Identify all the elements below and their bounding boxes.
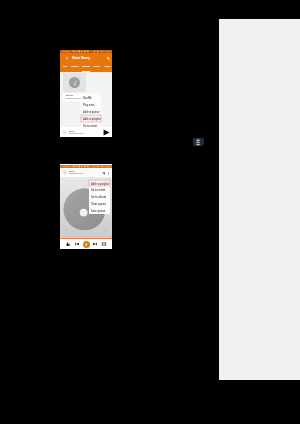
- button[interactable]: Go to album: [89, 193, 110, 200]
- staticText: SONGS: [93, 65, 100, 68]
- button[interactable]: ALBUMS: [80, 62, 91, 72]
- staticText: Go to artist: [83, 124, 98, 127]
- button[interactable]: Go to artist: [81, 122, 101, 129]
- button[interactable]: Play: [83, 241, 90, 248]
- staticText: unknown artist: [69, 172, 84, 175]
- staticText: unknown artist: [69, 132, 84, 135]
- staticText: Add to queue: [83, 110, 100, 113]
- button[interactable]: Add to playlist: [89, 180, 110, 186]
- staticText: ISTS: [63, 65, 67, 68]
- button[interactable]: Previous: [74, 241, 80, 247]
- button[interactable]: Add to playlist: [81, 115, 101, 122]
- staticText: GENRE: [104, 65, 111, 68]
- button[interactable]: ARTISTS: [69, 62, 80, 72]
- staticText: Add to playlist: [91, 182, 109, 185]
- button[interactable]: More options: [106, 171, 110, 175]
- button[interactable]: Go to artist: [89, 186, 110, 193]
- button[interactable]: ISTS: [60, 62, 69, 72]
- button[interactable]: Thumbs up: [65, 241, 71, 247]
- staticText: Play next: [83, 103, 95, 106]
- staticText: Shuffle: [83, 96, 92, 99]
- staticText: ALBUMS: [82, 65, 90, 68]
- button[interactable]: Add to queue: [81, 108, 101, 115]
- staticText: Clear queue: [91, 202, 106, 205]
- staticText: Go to artist: [91, 188, 106, 191]
- staticText: unknown artist: [66, 97, 81, 100]
- button[interactable]: GENRE: [102, 62, 112, 72]
- staticText: ARTISTS: [71, 65, 79, 68]
- staticText: Music library: [72, 56, 91, 60]
- button[interactable]: Queue: [101, 241, 107, 247]
- button[interactable]: Play next: [81, 101, 101, 108]
- staticText: song: [69, 170, 75, 173]
- staticText: Music: [66, 93, 73, 96]
- button[interactable]: Search: [106, 56, 110, 60]
- button[interactable]: Clear queue: [89, 200, 110, 207]
- button[interactable]: Cast to device: [101, 171, 105, 175]
- button[interactable]: Next: [92, 241, 98, 247]
- button[interactable]: SONGS: [91, 62, 102, 72]
- button[interactable]: Open navigation menu: [65, 56, 69, 60]
- button[interactable]: Save queue: [89, 207, 110, 214]
- button[interactable]: Music: [63, 93, 81, 101]
- staticText: Add to playlist: [83, 117, 101, 120]
- staticText: Go to album: [91, 195, 107, 198]
- button[interactable]: Shuffle: [81, 93, 101, 101]
- staticText: Save queue: [91, 209, 106, 212]
- button[interactable]: Play: [102, 128, 110, 136]
- staticText: song: [69, 130, 75, 133]
